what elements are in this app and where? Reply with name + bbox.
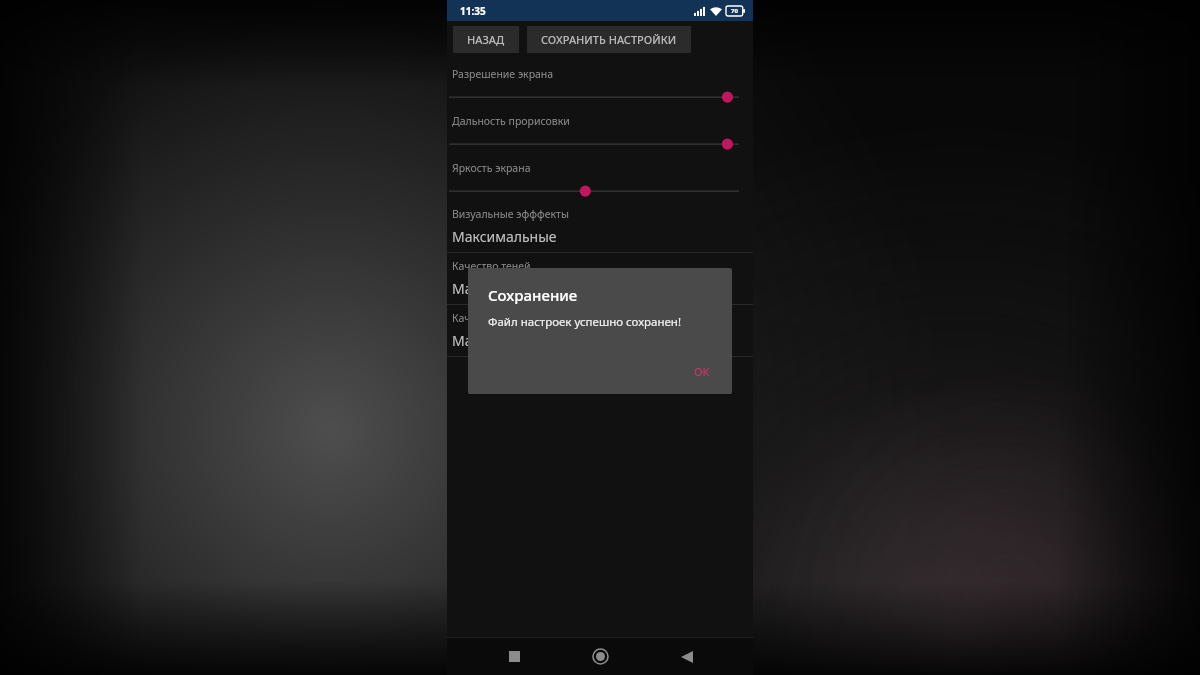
staticText: Качество текстур [452,311,539,325]
button[interactable]: Визуальные эфффекты [447,201,753,253]
staticText: СОХРАНИТЬ НАСТРОЙКИ [541,32,677,47]
staticText: Разрешение экрана [452,67,554,81]
staticText: 11:35 [460,4,486,18]
button[interactable]: Back [667,638,707,675]
staticText: Визуальные эфффекты [452,207,569,221]
button[interactable]: Дальность прорисовки [447,107,753,154]
staticText: 70 [731,7,738,15]
staticText: Максимальные [452,227,557,246]
staticText: Файл настроек успешно сохранен! [488,314,682,330]
button[interactable]: Разрешение экрана [447,60,753,107]
button[interactable]: Home [580,638,620,675]
staticText: НАЗАД [467,32,505,47]
staticText: OK [694,364,710,379]
button[interactable]: НАЗАД [453,26,519,53]
button[interactable]: OK [684,359,720,384]
button[interactable]: Recent apps [494,638,534,675]
button[interactable]: Яркость экрана [447,154,753,201]
button[interactable]: СОХРАНИТЬ НАСТРОЙКИ [527,26,691,53]
staticText: Сохранение [488,285,578,305]
staticText: Качество теней [452,259,531,273]
staticText: Дальность прорисовки [452,114,570,128]
staticText: Яркость экрана [452,161,531,175]
staticText: Максимальные [452,331,557,350]
staticText: Максимальные [452,279,557,298]
button[interactable]: Качество теней [447,253,753,305]
button[interactable]: Качество текстур [447,305,753,357]
